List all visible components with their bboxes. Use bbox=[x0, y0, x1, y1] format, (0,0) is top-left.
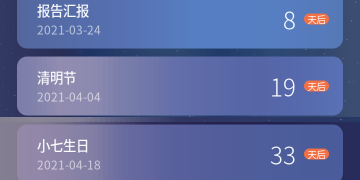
staticText: 天后 bbox=[307, 147, 325, 161]
staticText: 2021-03-24 bbox=[37, 20, 101, 38]
staticText: 33 bbox=[270, 137, 296, 171]
button[interactable]: 报告汇报 bbox=[17, 0, 343, 48]
staticText: 2021-04-04 bbox=[37, 87, 101, 105]
staticText: 小七生日 bbox=[37, 135, 89, 154]
staticText: 报告汇报 bbox=[37, 0, 89, 19]
staticText: 天后 bbox=[307, 79, 325, 93]
staticText: 2021-04-18 bbox=[37, 155, 101, 173]
staticText: 清明节 bbox=[37, 67, 76, 86]
button[interactable]: 清明节 bbox=[17, 56, 343, 115]
staticText: 19 bbox=[270, 69, 296, 103]
staticText: 天后 bbox=[307, 12, 325, 26]
staticText: 8 bbox=[283, 2, 296, 36]
button[interactable]: 小七生日 bbox=[17, 124, 343, 180]
